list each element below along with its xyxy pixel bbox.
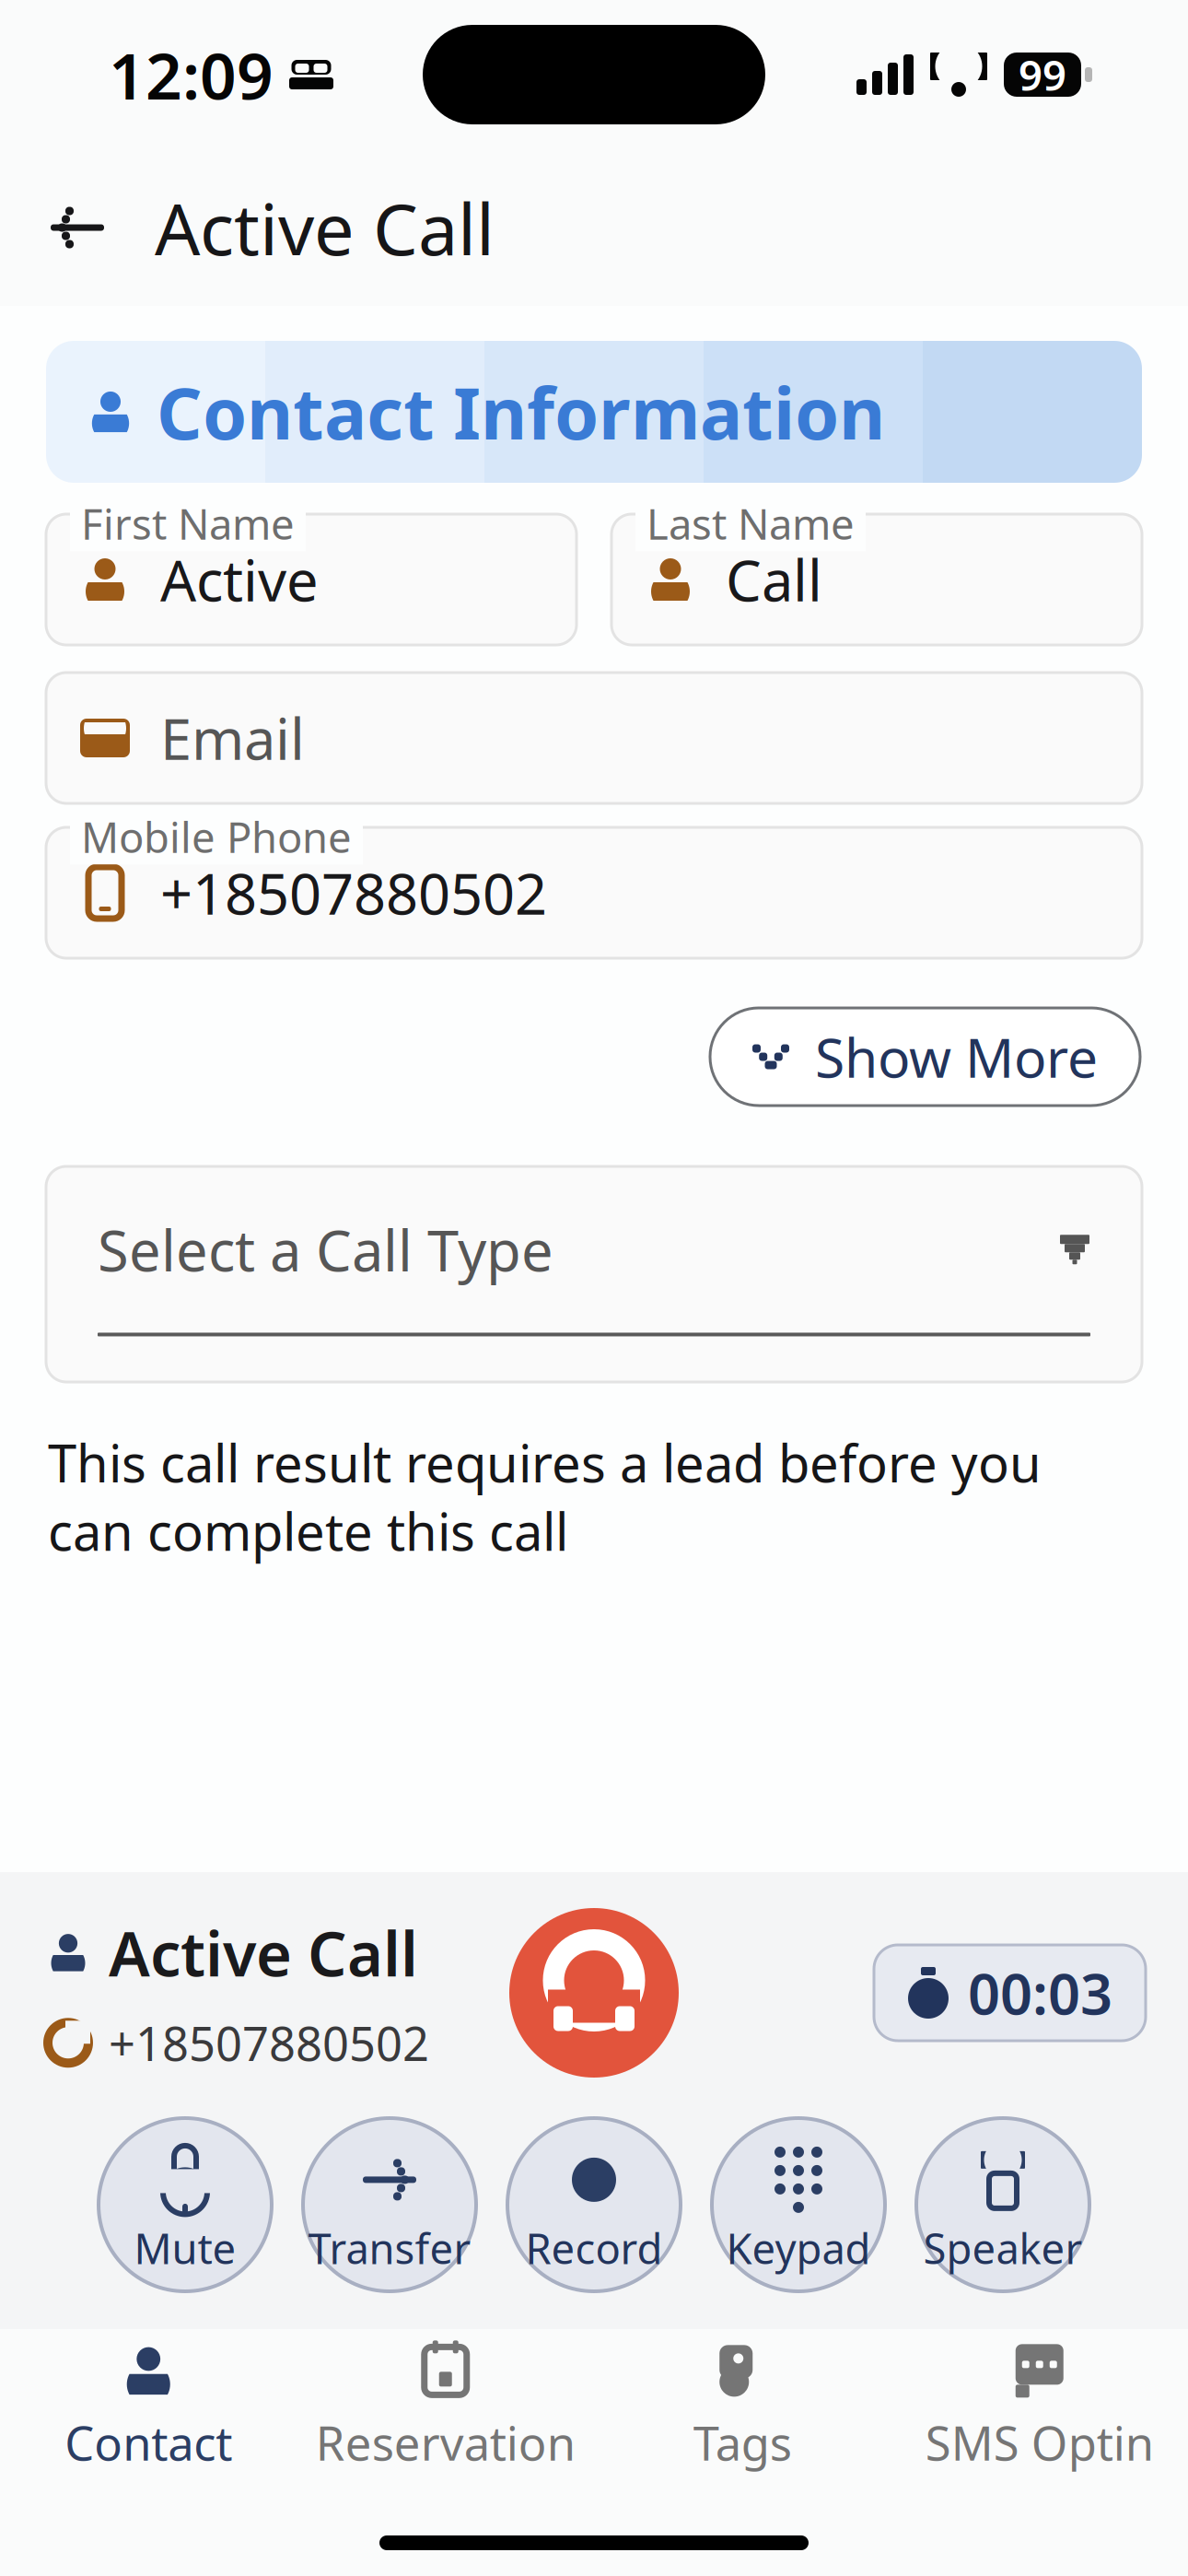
staticText: Mute: [134, 2220, 236, 2276]
button[interactable]: SMS Optin: [891, 2329, 1188, 2488]
staticText: Speaker: [923, 2220, 1083, 2276]
staticText: +18507880502: [160, 855, 547, 930]
staticText: SMS Optin: [925, 2411, 1154, 2473]
staticText: +18507880502: [109, 2012, 429, 2074]
button[interactable]: Reservation: [297, 2329, 594, 2488]
staticText: Mobile Phone: [81, 809, 352, 864]
staticText: 99: [1019, 47, 1066, 102]
button[interactable]: Record: [492, 2113, 696, 2296]
button[interactable]: Show More: [710, 1008, 1140, 1106]
button[interactable]: Call duration 00:03: [874, 1945, 1146, 2041]
staticText: Call: [726, 542, 822, 617]
staticText: Transfer: [308, 2220, 471, 2276]
staticText: Contact: [65, 2411, 232, 2473]
staticText: Active Call: [155, 180, 495, 275]
button[interactable]: End call: [509, 1908, 679, 2078]
button[interactable]: Keypad: [696, 2113, 901, 2296]
button[interactable]: Mute: [83, 2113, 287, 2296]
staticText: 12:09: [109, 32, 274, 117]
staticText: Active Call: [109, 1912, 418, 1993]
button[interactable]: Transfer: [287, 2113, 492, 2296]
staticText: Last Name: [646, 496, 855, 551]
button[interactable]: Select a Call Type: [0, 1166, 1188, 1382]
staticText: Contact Information: [157, 365, 885, 459]
staticText: Active: [160, 542, 319, 617]
staticText: Keypad: [726, 2220, 871, 2276]
button[interactable]: Speaker: [901, 2113, 1105, 2296]
staticText: Show More: [815, 1021, 1098, 1093]
staticText: First Name: [81, 496, 295, 551]
staticText: Record: [525, 2220, 663, 2276]
staticText: 00:03: [968, 1955, 1112, 2030]
staticText: Select a Call Type: [98, 1212, 553, 1287]
button[interactable]: Contact: [0, 2329, 297, 2488]
button[interactable]: Tags: [594, 2329, 891, 2488]
staticText: Reservation: [316, 2411, 575, 2473]
staticText: Tags: [693, 2411, 792, 2473]
staticText: This call result requires a lead before …: [48, 1428, 1042, 1565]
staticText: Email: [160, 700, 305, 775]
button[interactable]: Back: [28, 178, 127, 277]
